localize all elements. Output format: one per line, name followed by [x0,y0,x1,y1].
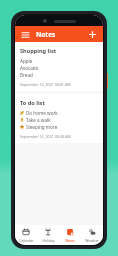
staticText: To do list [20,99,45,107]
staticText: Weather [85,238,99,243]
button[interactable]: Holiday [37,225,59,245]
button[interactable]: Notes [59,225,81,245]
staticText: Take a walk [26,117,51,123]
staticText: Avocado [20,65,39,71]
button[interactable]: Shopping list [15,42,103,91]
staticText: Notes [36,30,56,39]
staticText: Notes [65,238,75,243]
button[interactable]: Calendar [15,225,37,245]
button[interactable]: Weather [81,225,103,245]
staticText: Calendar [19,238,34,243]
staticText: September 14, 2021 00:41 AM [20,82,71,87]
button[interactable]: Add note [87,29,98,40]
staticText: Bread [20,72,33,78]
staticText: Shopping list [20,47,57,55]
button[interactable]: Open navigation menu [20,29,31,40]
button[interactable]: To do list [15,94,103,143]
staticText: Holiday [42,238,55,243]
staticText: Apple [20,58,33,64]
staticText: Do home work [26,110,58,116]
staticText: September 14, 2021 00:38 AM [20,134,71,139]
staticText: Sleeping more [26,124,58,130]
